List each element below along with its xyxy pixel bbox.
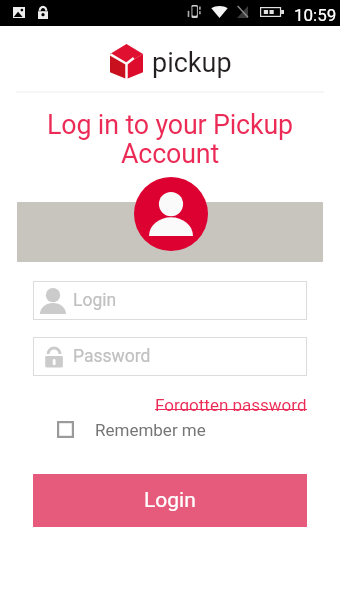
staticText: pickup	[152, 47, 232, 79]
other: Account avatar	[134, 177, 208, 251]
button[interactable]: Remember me	[57, 420, 206, 438]
staticText: Login	[73, 290, 117, 311]
staticText: Login	[144, 488, 196, 513]
button[interactable]: Password	[33, 337, 307, 376]
button[interactable]: Forgotten password	[155, 396, 307, 412]
button[interactable]: Login	[33, 474, 307, 527]
button[interactable]: Login	[33, 281, 307, 320]
staticText: 10:59	[294, 5, 337, 25]
staticText: Password	[73, 346, 151, 367]
staticText: Forgotten password	[155, 395, 307, 411]
staticText: Log in to your Pickup Account	[28, 109, 312, 170]
staticText: Remember me	[95, 420, 206, 438]
